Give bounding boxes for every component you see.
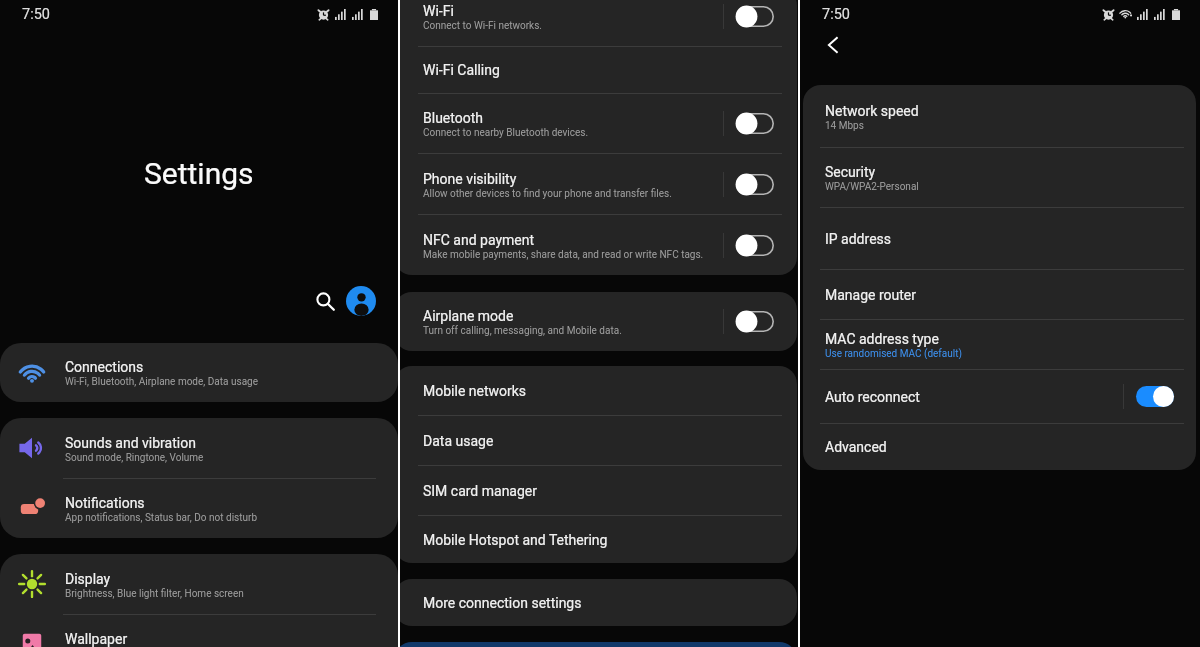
button[interactable]: Off: [736, 235, 774, 256]
button[interactable]: Airplane mode: [400, 292, 797, 351]
button[interactable]: Off: [736, 6, 774, 27]
button[interactable]: Security: [803, 148, 1196, 207]
staticText: Connect to Wi-Fi networks.: [423, 20, 542, 31]
button[interactable]: SIM card manager: [400, 466, 797, 515]
button[interactable]: Phone visibility: [400, 154, 797, 214]
button[interactable]: On: [1136, 386, 1174, 407]
staticText: Airplane mode: [423, 308, 514, 324]
button[interactable]: Wi-Fi: [400, 0, 797, 46]
staticText: SIM card manager: [423, 483, 538, 499]
button[interactable]: Off: [736, 113, 774, 134]
staticText: Manage router: [825, 287, 916, 303]
staticText: Connect to nearby Bluetooth devices.: [423, 127, 589, 138]
button[interactable]: Search: [308, 284, 342, 318]
staticText: Wi-Fi Calling: [423, 62, 500, 78]
button[interactable]: NFC and payment: [400, 215, 797, 275]
staticText: Advanced: [825, 439, 887, 455]
staticText: Turn off calling, messaging, and Mobile …: [423, 325, 622, 336]
staticText: Notifications: [65, 495, 145, 511]
staticText: Wi-Fi: [423, 3, 454, 19]
staticText: Use randomised MAC (default): [825, 348, 962, 359]
button[interactable]: Mobile networks: [400, 366, 797, 415]
staticText: Sounds and vibration: [65, 435, 196, 451]
button[interactable]: [400, 642, 797, 647]
button[interactable]: Auto reconnect: [803, 370, 1196, 423]
staticText: Wi-Fi, Bluetooth, Airplane mode, Data us…: [65, 376, 258, 387]
button[interactable]: Back: [816, 28, 850, 62]
button[interactable]: Sounds and vibration: [0, 418, 398, 478]
staticText: 14 Mbps: [825, 120, 864, 131]
staticText: Security: [825, 164, 876, 180]
button[interactable]: Off: [736, 174, 774, 195]
staticText: WPA/WPA2-Personal: [825, 181, 919, 192]
staticText: Wallpaper: [65, 631, 128, 647]
staticText: More connection settings: [423, 595, 582, 611]
button[interactable]: More connection settings: [400, 579, 797, 626]
staticText: Connections: [65, 359, 144, 375]
button[interactable]: Notifications: [0, 479, 398, 538]
button[interactable]: Account: [346, 286, 376, 316]
staticText: App notifications, Status bar, Do not di…: [65, 512, 258, 523]
staticText: Bluetooth: [423, 110, 483, 126]
staticText: 7:50: [22, 6, 50, 23]
button[interactable]: Off: [736, 311, 774, 332]
button[interactable]: Bluetooth: [400, 94, 797, 153]
staticText: Auto reconnect: [825, 389, 920, 405]
staticText: Display: [65, 571, 111, 587]
staticText: NFC and payment: [423, 232, 535, 248]
staticText: Sound mode, Ringtone, Volume: [65, 452, 204, 463]
staticText: Allow other devices to find your phone a…: [423, 188, 672, 199]
button[interactable]: Mobile Hotspot and Tethering: [400, 516, 797, 563]
staticText: Network speed: [825, 103, 919, 119]
button[interactable]: Advanced: [803, 424, 1196, 470]
button[interactable]: Wi-Fi Calling: [400, 47, 797, 93]
staticText: Mobile Hotspot and Tethering: [423, 532, 608, 548]
staticText: Data usage: [423, 433, 494, 449]
staticText: Phone visibility: [423, 171, 517, 187]
button[interactable]: Display: [0, 554, 398, 614]
button[interactable]: Network speed: [803, 85, 1196, 147]
button[interactable]: IP address: [803, 208, 1196, 269]
button[interactable]: Data usage: [400, 416, 797, 465]
staticText: Settings: [144, 156, 254, 191]
staticText: Make mobile payments, share data, and re…: [423, 249, 704, 260]
staticText: MAC address type: [825, 331, 939, 347]
button[interactable]: Connections: [0, 343, 398, 402]
staticText: Mobile networks: [423, 383, 527, 399]
button[interactable]: MAC address type: [803, 320, 1196, 369]
button[interactable]: Manage router: [803, 270, 1196, 319]
staticText: IP address: [825, 231, 892, 247]
staticText: 7:50: [822, 6, 850, 23]
button[interactable]: Wallpaper: [0, 615, 398, 647]
staticText: Brightness, Blue light filter, Home scre…: [65, 588, 244, 599]
